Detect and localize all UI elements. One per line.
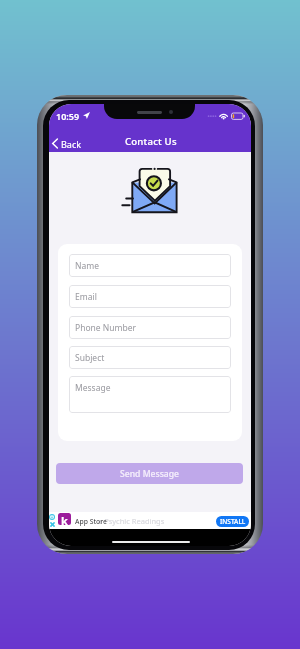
button[interactable]: INSTALL [216,516,249,527]
staticText: k [61,513,68,525]
button[interactable]: Subject [69,346,231,369]
button[interactable]: Ad info [49,514,55,520]
button[interactable]: Email [69,285,231,308]
button[interactable]: Message [69,376,231,413]
staticText: Subject [75,352,105,364]
button[interactable]: Send Message [56,463,243,484]
staticText: INSTALL [220,517,246,526]
staticText: Email [75,291,97,303]
button[interactable]: Back [49,134,88,153]
staticText: Send Message [120,468,179,480]
staticText: App Store [75,517,107,526]
staticText: Phone Number [75,322,136,334]
staticText: Back [61,138,82,150]
staticText: Contact Us [125,135,177,148]
staticText: Message [75,382,111,394]
button[interactable]: Phone Number [69,316,231,339]
staticText: 10:59 [56,110,80,122]
staticText: Name [75,260,99,272]
button[interactable]: Close ad [50,522,55,527]
button[interactable]: k [58,513,71,525]
button[interactable]: Name [69,254,231,277]
staticText: a Psychic Readings [98,516,165,526]
